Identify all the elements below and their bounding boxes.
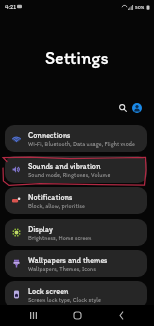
button[interactable]: Wallpapers and themes (5, 250, 147, 277)
staticText: Notifications (28, 192, 73, 202)
button[interactable]: Lock screen (5, 281, 147, 305)
staticText: Sounds and vibration (28, 161, 101, 171)
button[interactable]: Home (66, 305, 88, 326)
button[interactable]: Connections (5, 125, 147, 152)
staticText: Lock screen (28, 286, 69, 296)
button[interactable]: Notifications (5, 187, 147, 214)
button[interactable]: Search (116, 101, 129, 114)
staticText: 50% (135, 4, 145, 10)
button[interactable]: Sounds and vibration (5, 156, 147, 183)
button[interactable]: Display (5, 219, 147, 246)
staticText: Brightness, Home screen (28, 234, 92, 241)
staticText: Connections (28, 130, 71, 140)
staticText: Wallpapers, Themes, Icons (28, 265, 96, 272)
staticText: Block, allow, prioritise (28, 202, 85, 209)
staticText: Wi-Fi, Bluetooth, Data usage, Flight mod… (28, 140, 135, 147)
button[interactable]: Account (132, 103, 142, 113)
staticText: Display (28, 224, 53, 234)
staticText: Sound mode, Ringtones, Volume (28, 171, 111, 178)
staticText: Screen lock type, Clock style (28, 296, 101, 303)
staticText: Settings (45, 47, 109, 69)
staticText: 4:21 (5, 3, 17, 10)
button[interactable]: Back (110, 305, 132, 326)
staticText: Wallpapers and themes (28, 255, 108, 265)
button[interactable]: Recents (22, 305, 44, 326)
